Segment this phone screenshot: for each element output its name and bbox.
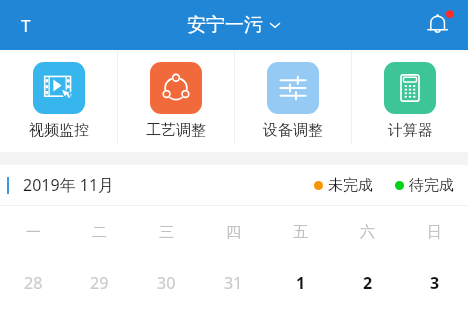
staticText: 1 (296, 272, 306, 294)
staticText: 计算器 (388, 121, 433, 140)
staticText: 六 (360, 223, 375, 242)
button[interactable]: 31 (200, 258, 267, 308)
staticText: 2 (363, 272, 373, 294)
staticText: 日 (427, 223, 442, 242)
button[interactable]: Notifications (420, 6, 458, 44)
staticText: T (21, 14, 31, 37)
button[interactable]: 待完成 (395, 176, 454, 195)
staticText: 工艺调整 (146, 121, 206, 140)
button[interactable]: 1 (267, 258, 334, 308)
button[interactable]: 30 (133, 258, 200, 308)
button[interactable]: 未完成 (314, 176, 373, 195)
staticText: 一 (26, 223, 41, 242)
staticText: 3 (430, 272, 440, 294)
button[interactable]: 2 (334, 258, 401, 308)
staticText: 30 (157, 272, 176, 294)
button[interactable]: 3 (401, 258, 468, 308)
staticText: 设备调整 (263, 121, 323, 140)
button[interactable]: 工艺调整 (118, 50, 234, 152)
staticText: 29 (90, 272, 109, 294)
button[interactable]: 29 (66, 258, 133, 308)
staticText: 视频监控 (29, 121, 89, 140)
staticText: 四 (226, 223, 241, 242)
staticText: 二 (92, 223, 107, 242)
staticText: 28 (24, 272, 43, 294)
staticText: 待完成 (409, 176, 454, 195)
staticText: 安宁一污 (187, 13, 263, 37)
staticText: 三 (159, 223, 174, 242)
button[interactable]: 视频监控 (0, 50, 117, 152)
button[interactable]: 28 (0, 258, 66, 308)
button[interactable]: 设备调整 (235, 50, 351, 152)
button[interactable]: 计算器 (352, 50, 468, 152)
staticText: 五 (293, 223, 308, 242)
staticText: 未完成 (328, 176, 373, 195)
button[interactable]: 安宁一污 (179, 9, 289, 41)
staticText: 2019年 11月 (23, 174, 115, 196)
staticText: 31 (224, 272, 243, 294)
button[interactable]: Text tool (8, 7, 44, 43)
